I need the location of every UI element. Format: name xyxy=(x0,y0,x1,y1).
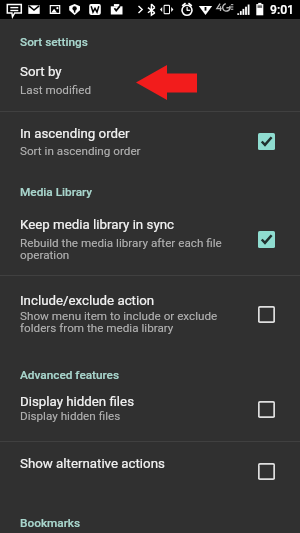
staticText: Sort by xyxy=(20,64,62,80)
button[interactable]: Display hidden files xyxy=(258,401,275,418)
button[interactable] xyxy=(0,18,300,111)
button[interactable]: In ascending order xyxy=(258,133,275,150)
staticText: Sort in ascending order xyxy=(20,144,244,158)
button[interactable]: Keep media library in sync xyxy=(258,231,275,248)
staticText: Media Library xyxy=(20,185,93,199)
staticText: Show alternative actions xyxy=(20,456,165,472)
staticText: Bookmarks xyxy=(20,516,81,530)
staticText: Advanced features xyxy=(20,368,120,382)
staticText: Display hidden files xyxy=(20,409,244,423)
button[interactable] xyxy=(0,112,300,168)
button[interactable] xyxy=(0,442,300,500)
button[interactable] xyxy=(0,350,300,441)
staticText: 9:01 xyxy=(270,3,295,17)
staticText: Display hidden files xyxy=(20,394,135,410)
button[interactable]: Show alternative actions xyxy=(258,463,275,480)
button[interactable]: Include/exclude action xyxy=(258,306,275,323)
staticText: Show menu item to include or exclude fol… xyxy=(20,309,244,335)
staticText: Include/exclude action xyxy=(20,293,155,309)
staticText: Last modified xyxy=(20,83,244,97)
staticText: In ascending order xyxy=(20,126,130,142)
staticText: Sort settings xyxy=(20,35,88,49)
staticText: Rebuild the media library after each fil… xyxy=(20,236,244,262)
button[interactable] xyxy=(0,168,300,275)
button[interactable] xyxy=(0,276,300,350)
staticText: Keep media library in sync xyxy=(20,217,174,233)
